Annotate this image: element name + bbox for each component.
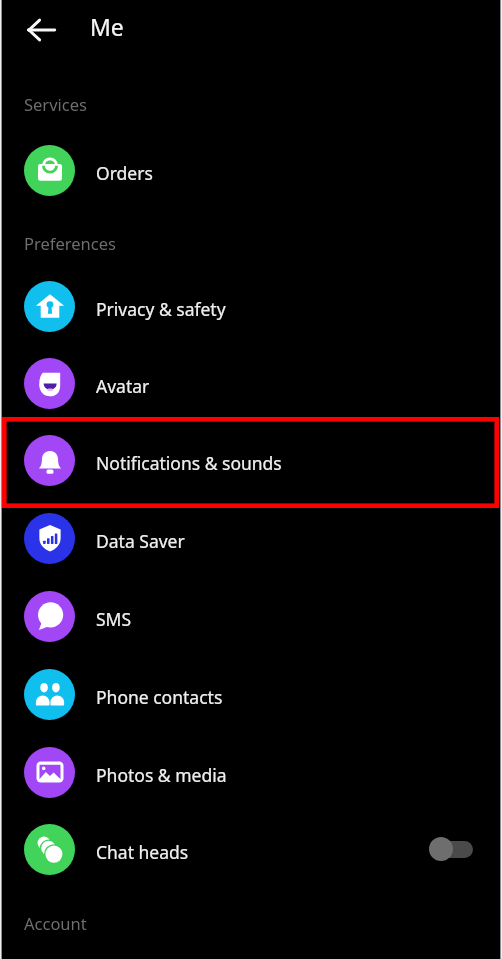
button[interactable]: Orders [0, 131, 502, 209]
button[interactable]: SMS [0, 577, 502, 655]
button[interactable]: Chat heads [0, 810, 502, 888]
staticText: Notifications & sounds [96, 451, 282, 475]
button[interactable]: Avatar [0, 344, 502, 422]
staticText: Preferences [24, 232, 116, 254]
button[interactable]: Data Saver [0, 499, 502, 577]
button[interactable]: Chat heads toggle [429, 836, 473, 862]
button[interactable]: Back [19, 8, 63, 52]
button[interactable]: Privacy & safety [0, 267, 502, 345]
staticText: Phone contacts [96, 685, 223, 709]
button[interactable]: Phone contacts [0, 655, 502, 733]
staticText: Me [90, 11, 124, 42]
staticText: Services [24, 93, 87, 115]
staticText: SMS [96, 607, 132, 631]
staticText: Orders [96, 161, 153, 185]
staticText: Privacy & safety [96, 297, 226, 321]
staticText: Avatar [96, 374, 150, 398]
button[interactable]: Notifications & sounds [0, 421, 502, 499]
staticText: Account [24, 912, 87, 934]
staticText: Chat heads [96, 840, 189, 864]
staticText: Photos & media [96, 763, 227, 787]
button[interactable]: Photos & media [0, 733, 502, 811]
staticText: Data Saver [96, 529, 185, 553]
